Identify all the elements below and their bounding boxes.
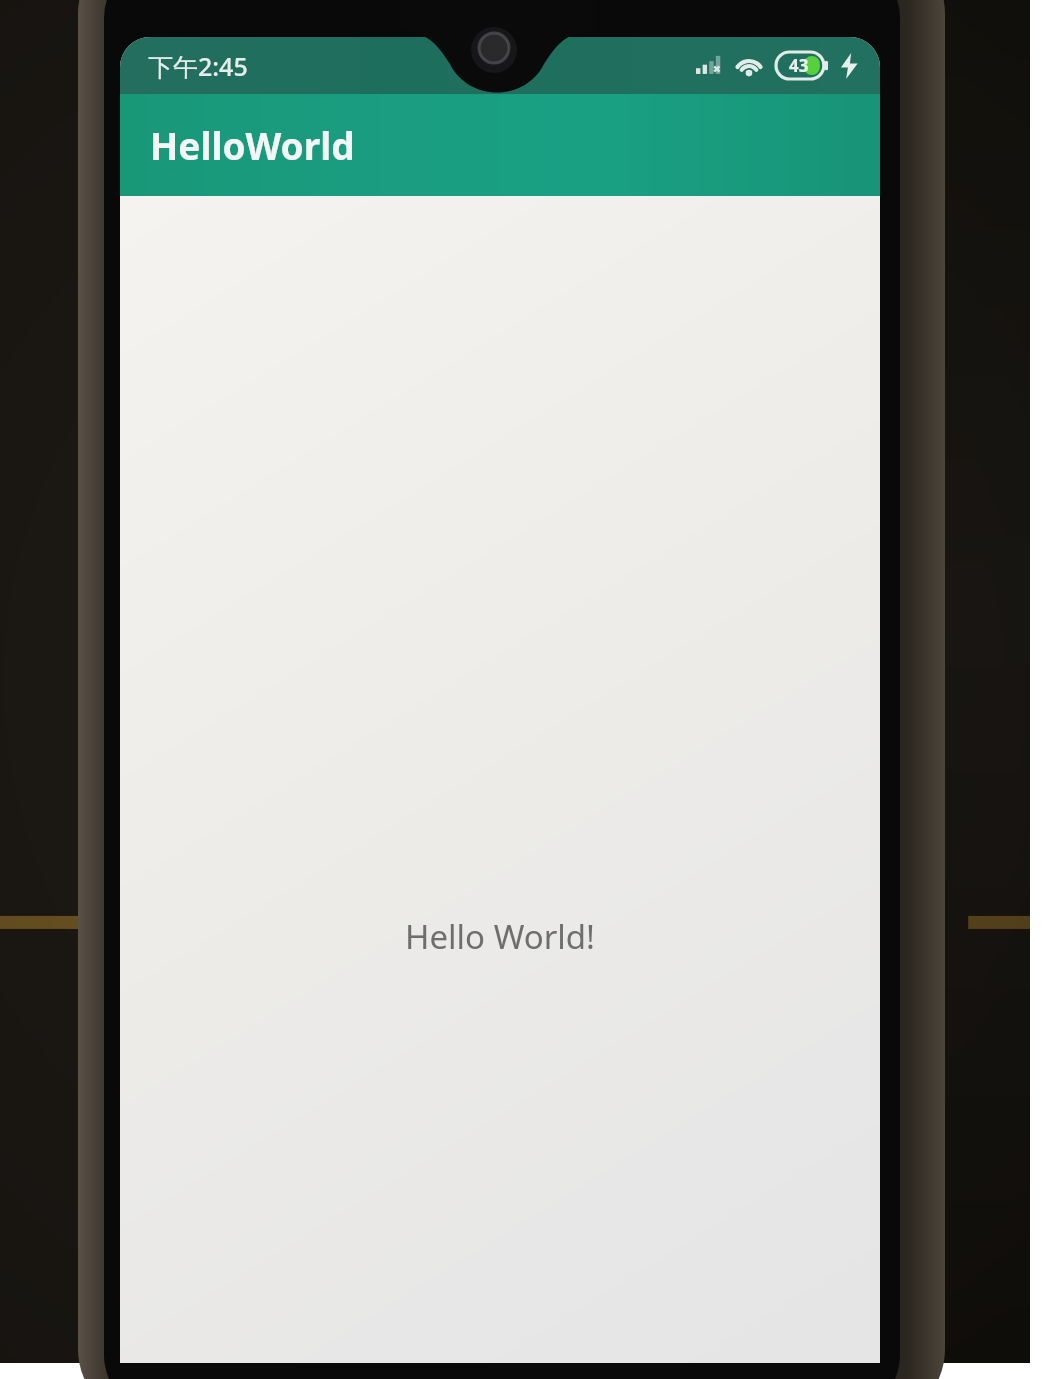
staticText: Hello World! [405,914,595,959]
staticText: HelloWorld [150,120,355,170]
other: Mobile signal [696,55,722,77]
staticText: 下午2:45 [148,49,248,83]
other: Charging [840,53,858,79]
staticText: 43 [789,54,809,77]
other: Wi-Fi [734,54,764,78]
button[interactable]: HelloWorld [120,94,880,196]
other: Battery 43 percent [776,52,828,79]
